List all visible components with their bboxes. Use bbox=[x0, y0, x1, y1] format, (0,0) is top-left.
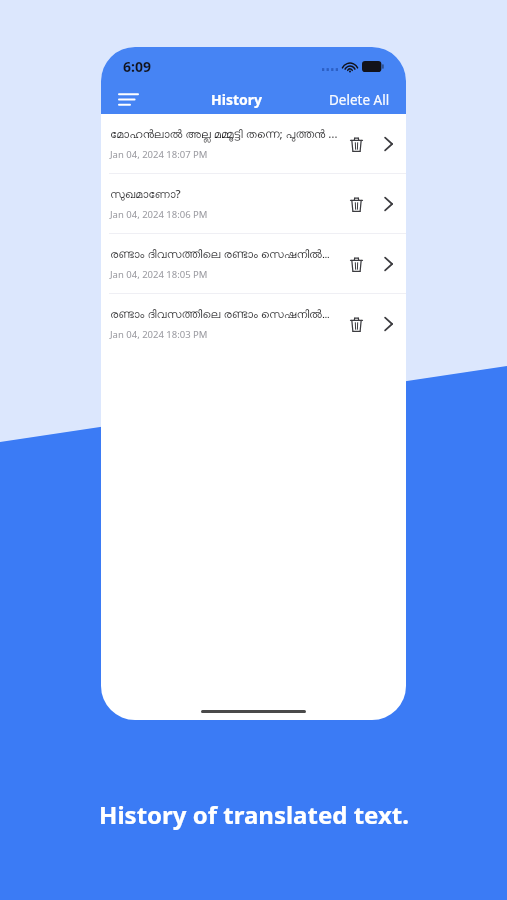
button[interactable]: Delete bbox=[343, 131, 369, 157]
button[interactable]: രണ്ടാം ദിവസത്തിലെ രണ്ടാം സെഷനിൽത്ത… bbox=[101, 294, 406, 353]
staticText: Jan 04, 2024 18:06 PM bbox=[110, 208, 208, 221]
button[interactable]: സുഖമാണോ? bbox=[101, 174, 406, 233]
button[interactable]: Open details bbox=[375, 191, 401, 217]
button[interactable]: Open details bbox=[375, 131, 401, 157]
staticText: Jan 04, 2024 18:03 PM bbox=[110, 328, 208, 341]
staticText: History bbox=[211, 90, 263, 109]
staticText: Delete All bbox=[329, 91, 390, 109]
button[interactable]: Menu bbox=[111, 85, 145, 114]
button[interactable]: മോഹൻലാൽ അല്ല മമ്മൂട്ടി തന്നെ; പുത്തൻ നേ… bbox=[101, 114, 406, 173]
staticText: രണ്ടാം ദിവസത്തിലെ രണ്ടാം സെഷനിൽത്ത… bbox=[110, 306, 339, 322]
staticText: സുഖമാണോ? bbox=[110, 186, 181, 202]
button[interactable]: രണ്ടാം ദിവസത്തിലെ രണ്ടാം സെഷനിൽത്ത… bbox=[101, 234, 406, 293]
staticText: Jan 04, 2024 18:07 PM bbox=[110, 148, 208, 161]
button[interactable]: Delete All bbox=[329, 91, 396, 109]
button[interactable]: Open details bbox=[375, 251, 401, 277]
staticText: രണ്ടാം ദിവസത്തിലെ രണ്ടാം സെഷനിൽത്ത… bbox=[110, 246, 339, 262]
button[interactable]: History bbox=[211, 90, 263, 109]
button[interactable]: Open details bbox=[375, 311, 401, 337]
staticText: മോഹൻലാൽ അല്ല മമ്മൂട്ടി തന്നെ; പുത്തൻ നേ… bbox=[110, 126, 339, 142]
staticText: 6:09 bbox=[123, 57, 151, 76]
button[interactable]: Delete bbox=[343, 191, 369, 217]
staticText: History of translated text. bbox=[99, 798, 409, 831]
button[interactable]: Delete bbox=[343, 251, 369, 277]
button[interactable]: Delete bbox=[343, 311, 369, 337]
staticText: Jan 04, 2024 18:05 PM bbox=[110, 268, 208, 281]
